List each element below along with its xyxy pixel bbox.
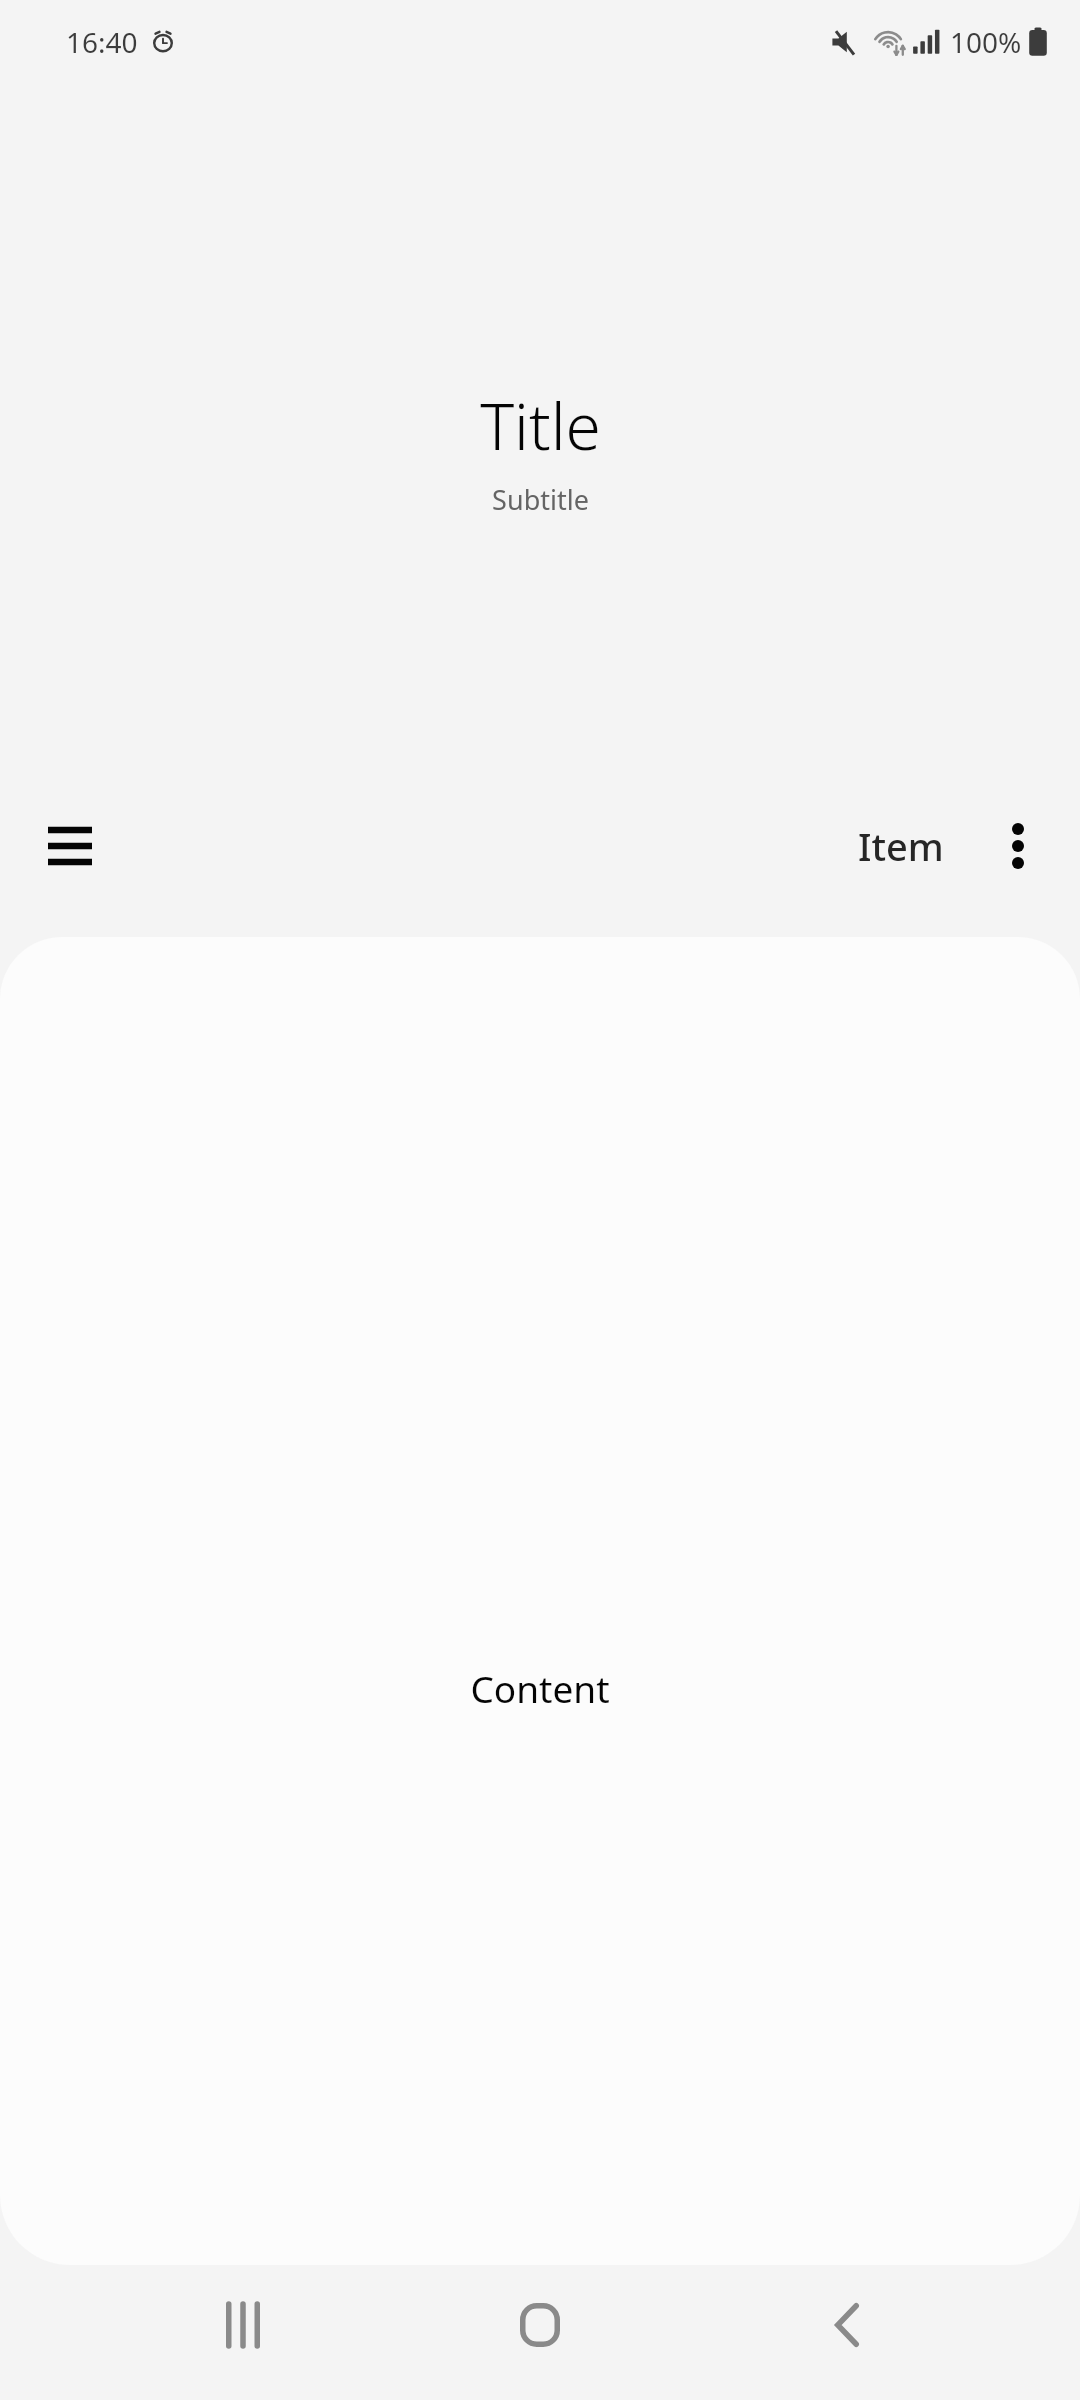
button[interactable]: Menu — [26, 802, 114, 890]
button[interactable]: More options — [974, 802, 1062, 890]
staticText: Subtitle — [492, 481, 589, 518]
button[interactable]: Back — [787, 2265, 907, 2385]
staticText: Title — [480, 382, 601, 469]
staticText: 100% — [950, 23, 1022, 61]
button[interactable]: Item — [848, 802, 954, 890]
staticText: Content — [470, 1663, 610, 1713]
staticText: Item — [858, 820, 944, 872]
button[interactable]: Recents — [183, 2265, 303, 2385]
button[interactable]: Home — [480, 2265, 600, 2385]
staticText: 16:40 — [66, 23, 138, 61]
